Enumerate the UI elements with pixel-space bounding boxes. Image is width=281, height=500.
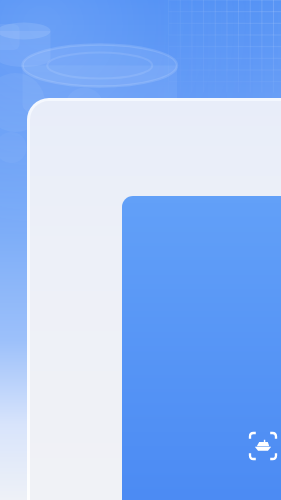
button[interactable] [30, 101, 281, 500]
button[interactable]: Scan [122, 196, 281, 500]
